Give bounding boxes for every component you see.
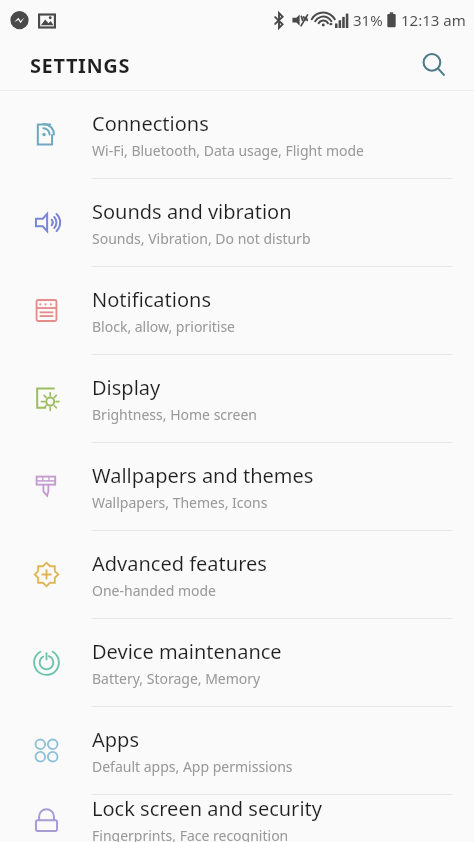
staticText: Device maintenance	[92, 638, 282, 665]
button[interactable]: Search	[412, 43, 456, 87]
staticText: Wallpapers and themes	[92, 462, 314, 489]
staticText: Fingerprints, Face recognition	[92, 826, 289, 842]
staticText: SETTINGS	[30, 52, 131, 79]
staticText: Connections	[92, 110, 209, 137]
staticText: Display	[92, 374, 161, 401]
staticText: Brightness, Home screen	[92, 405, 258, 424]
button[interactable]: Advanced features	[0, 531, 474, 619]
button[interactable]: Lock screen and security	[0, 795, 474, 842]
staticText: Advanced features	[92, 550, 267, 577]
button[interactable]: Wallpapers and themes	[0, 443, 474, 531]
staticText: Sounds, Vibration, Do not disturb	[92, 229, 311, 248]
staticText: Sounds and vibration	[92, 198, 292, 225]
staticText: 12:13 am	[401, 10, 466, 30]
button[interactable]: Connections	[0, 91, 474, 179]
button[interactable]: Apps	[0, 707, 474, 795]
staticText: Block, allow, prioritise	[92, 317, 236, 336]
staticText: Battery, Storage, Memory	[92, 669, 261, 688]
button[interactable]: Sounds and vibration	[0, 179, 474, 267]
staticText: Wi-Fi, Bluetooth, Data usage, Flight mod…	[92, 141, 365, 160]
staticText: Notifications	[92, 286, 211, 313]
button[interactable]: Notifications	[0, 267, 474, 355]
staticText: Wallpapers, Themes, Icons	[92, 493, 268, 512]
staticText: One-handed mode	[92, 581, 216, 600]
staticText: 31%	[353, 10, 383, 30]
button[interactable]: Device maintenance	[0, 619, 474, 707]
staticText: Apps	[92, 726, 139, 753]
staticText: Lock screen and security	[92, 795, 322, 822]
staticText: Default apps, App permissions	[92, 757, 293, 776]
button[interactable]: Display	[0, 355, 474, 443]
